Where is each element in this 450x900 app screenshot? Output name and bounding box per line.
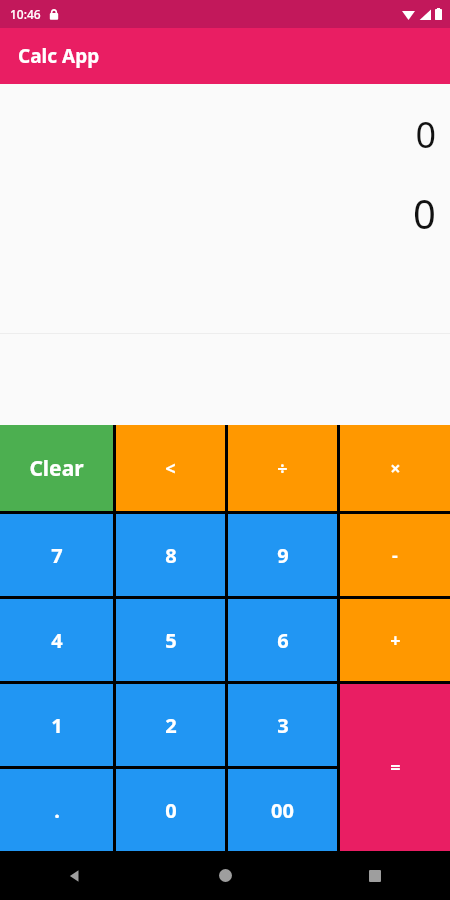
button[interactable]: Clear (0, 425, 113, 511)
staticText: 9 (277, 542, 289, 569)
staticText: - (392, 543, 398, 568)
button[interactable]: Divide (228, 425, 337, 511)
staticText: ÷ (277, 456, 288, 481)
staticText: + (390, 628, 401, 653)
button[interactable]: 7 (0, 514, 113, 596)
staticText: 5 (165, 627, 177, 654)
staticText: 10:46 (10, 6, 41, 22)
staticText: 6 (277, 627, 289, 654)
button[interactable]: 2 (116, 684, 225, 766)
button[interactable]: Subtract (340, 514, 450, 596)
staticText: 3 (277, 712, 289, 739)
staticText: 0 (165, 797, 177, 824)
button[interactable]: 0 (116, 769, 225, 851)
button[interactable]: Home (150, 851, 300, 900)
button[interactable]: Multiply (340, 425, 450, 511)
staticText: Clear (29, 454, 84, 483)
staticText: < (165, 456, 176, 481)
staticText: Calc App (18, 43, 100, 69)
button[interactable]: Equals (340, 684, 450, 851)
staticText: = (390, 755, 401, 780)
staticText: 8 (165, 542, 177, 569)
staticText: 1 (51, 712, 63, 739)
staticText: 00 (271, 797, 294, 824)
staticText: 0 (413, 186, 436, 240)
button[interactable]: Decimal point (0, 769, 113, 851)
staticText: 7 (51, 542, 63, 569)
button[interactable]: 1 (0, 684, 113, 766)
staticText: . (54, 797, 60, 824)
button[interactable]: Back (0, 851, 150, 900)
button[interactable]: 4 (0, 599, 113, 681)
staticText: × (390, 456, 401, 481)
staticText: 2 (165, 712, 177, 739)
button[interactable]: Backspace (116, 425, 225, 511)
staticText: 4 (51, 627, 63, 654)
button[interactable]: Add (340, 599, 450, 681)
button[interactable]: 5 (116, 599, 225, 681)
button[interactable]: 6 (228, 599, 337, 681)
button[interactable]: 3 (228, 684, 337, 766)
button[interactable]: 00 (228, 769, 337, 851)
button[interactable]: 8 (116, 514, 225, 596)
button[interactable]: Recent apps (300, 851, 450, 900)
button[interactable]: 9 (228, 514, 337, 596)
staticText: 0 (415, 110, 436, 159)
